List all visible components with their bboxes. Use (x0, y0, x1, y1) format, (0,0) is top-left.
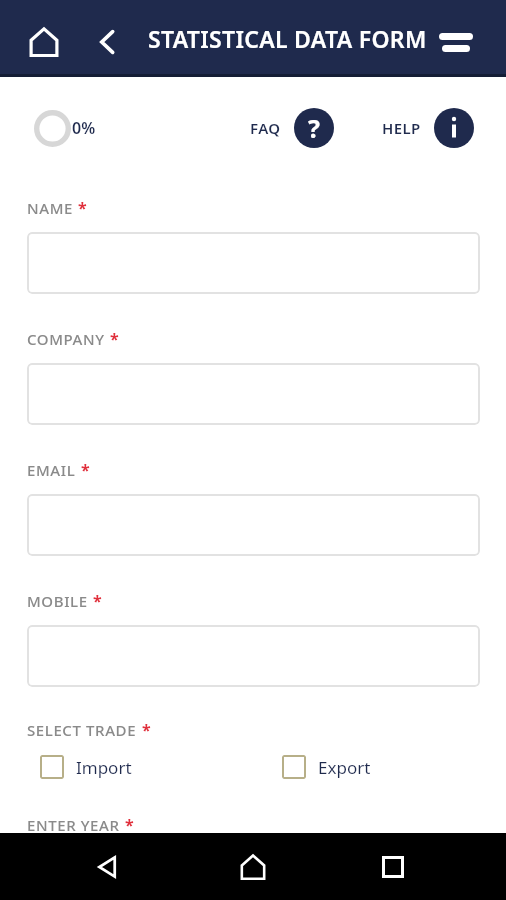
button[interactable]: Import (40, 749, 132, 785)
staticText: * (125, 814, 134, 836)
staticText: * (81, 459, 90, 481)
staticText: * (110, 328, 119, 350)
button[interactable]: Progress (32, 108, 72, 148)
button[interactable] (27, 363, 480, 425)
staticText: STATISTICAL DATA FORM (148, 23, 427, 54)
button[interactable]: Recent apps (369, 843, 417, 891)
staticText: * (78, 197, 87, 219)
staticText: COMPANY (27, 329, 105, 349)
button[interactable]: Menu (432, 18, 480, 66)
button[interactable]: Back (86, 20, 130, 64)
button[interactable] (27, 494, 480, 556)
staticText: EMAIL (27, 460, 76, 480)
staticText: Import (76, 756, 132, 779)
button[interactable]: Home (22, 20, 66, 64)
staticText: 0% (72, 117, 96, 139)
staticText: * (93, 590, 102, 612)
staticText: ? (308, 111, 320, 145)
button[interactable]: Back (84, 843, 132, 891)
staticText: FAQ (250, 118, 281, 138)
button[interactable] (27, 232, 480, 294)
staticText: NAME (27, 198, 73, 218)
button[interactable]: Export (282, 749, 371, 785)
staticText: HELP (382, 118, 421, 138)
staticText: SELECT TRADE (27, 720, 137, 740)
button[interactable]: Home (229, 843, 277, 891)
staticText: * (142, 719, 151, 741)
staticText: Export (318, 756, 371, 779)
staticText: ENTER YEAR (27, 815, 120, 835)
button[interactable]: HELP (382, 105, 474, 151)
staticText: MOBILE (27, 591, 88, 611)
button[interactable]: FAQ (250, 105, 334, 151)
button[interactable] (27, 625, 480, 687)
